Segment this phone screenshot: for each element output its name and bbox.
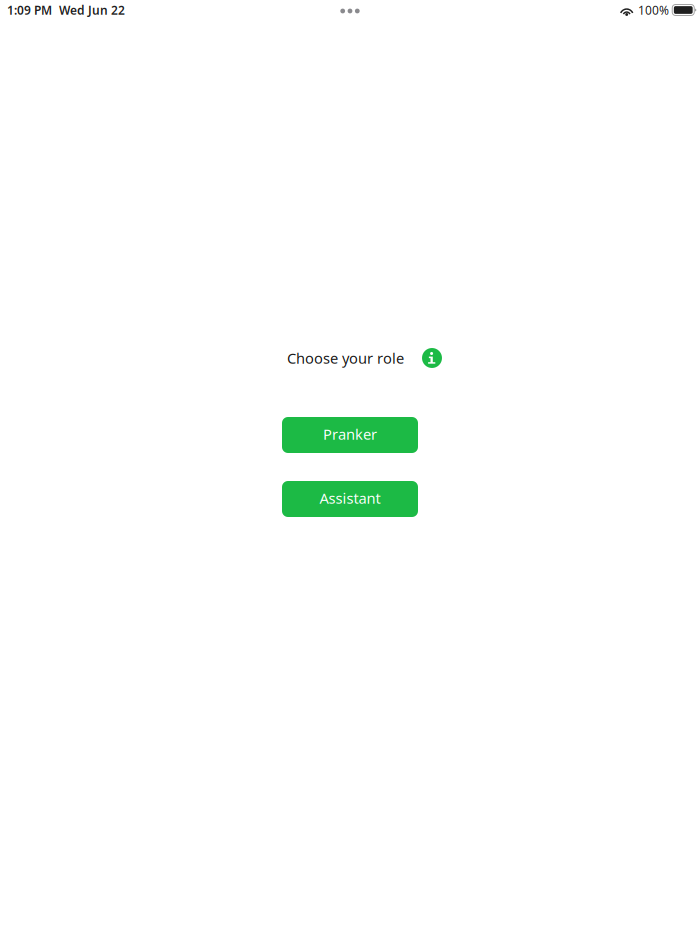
staticText: Pranker: [323, 424, 377, 444]
staticText: Assistant: [319, 488, 380, 508]
staticText: Wed Jun 22: [59, 2, 125, 18]
button[interactable]: About roles: [422, 348, 442, 368]
staticText: 100%: [638, 2, 669, 18]
staticText: Choose your role: [287, 348, 404, 368]
staticText: 1:09 PM: [7, 2, 52, 18]
button[interactable]: Assistant: [282, 481, 418, 517]
button[interactable]: Pranker: [282, 417, 418, 453]
